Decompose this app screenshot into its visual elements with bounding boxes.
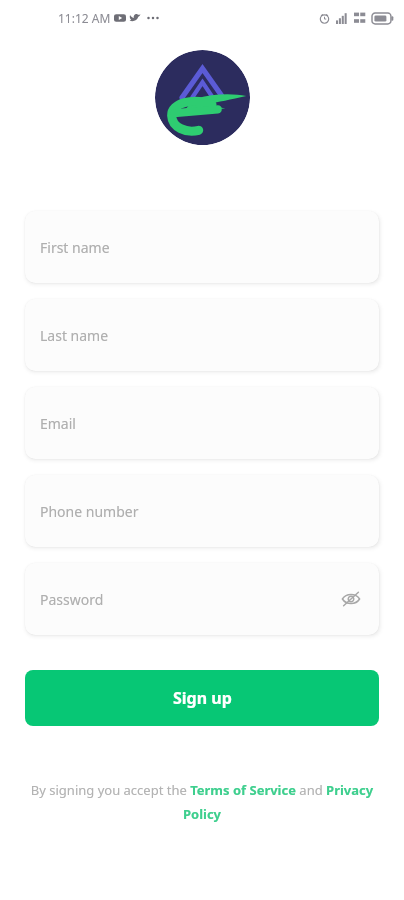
staticText: Phone number [40, 502, 139, 521]
staticText: Password [40, 590, 104, 609]
button[interactable]: Password [25, 563, 379, 635]
staticText: 11:12 AM [58, 10, 111, 26]
button[interactable]: First name [25, 211, 379, 283]
staticText: By signing you accept the Terms of Servi… [30, 781, 374, 823]
button[interactable]: Last name [25, 299, 379, 371]
staticText: First name [40, 238, 110, 257]
button[interactable]: Sign up [25, 670, 379, 726]
staticText: Last name [40, 326, 109, 345]
button[interactable]: Show password [337, 585, 365, 613]
button[interactable]: Phone number [25, 475, 379, 547]
button[interactable]: Email [25, 387, 379, 459]
button[interactable]: By signing you accept the Terms of Servi… [30, 781, 374, 823]
staticText: Email [40, 414, 76, 433]
staticText: Sign up [173, 687, 232, 709]
